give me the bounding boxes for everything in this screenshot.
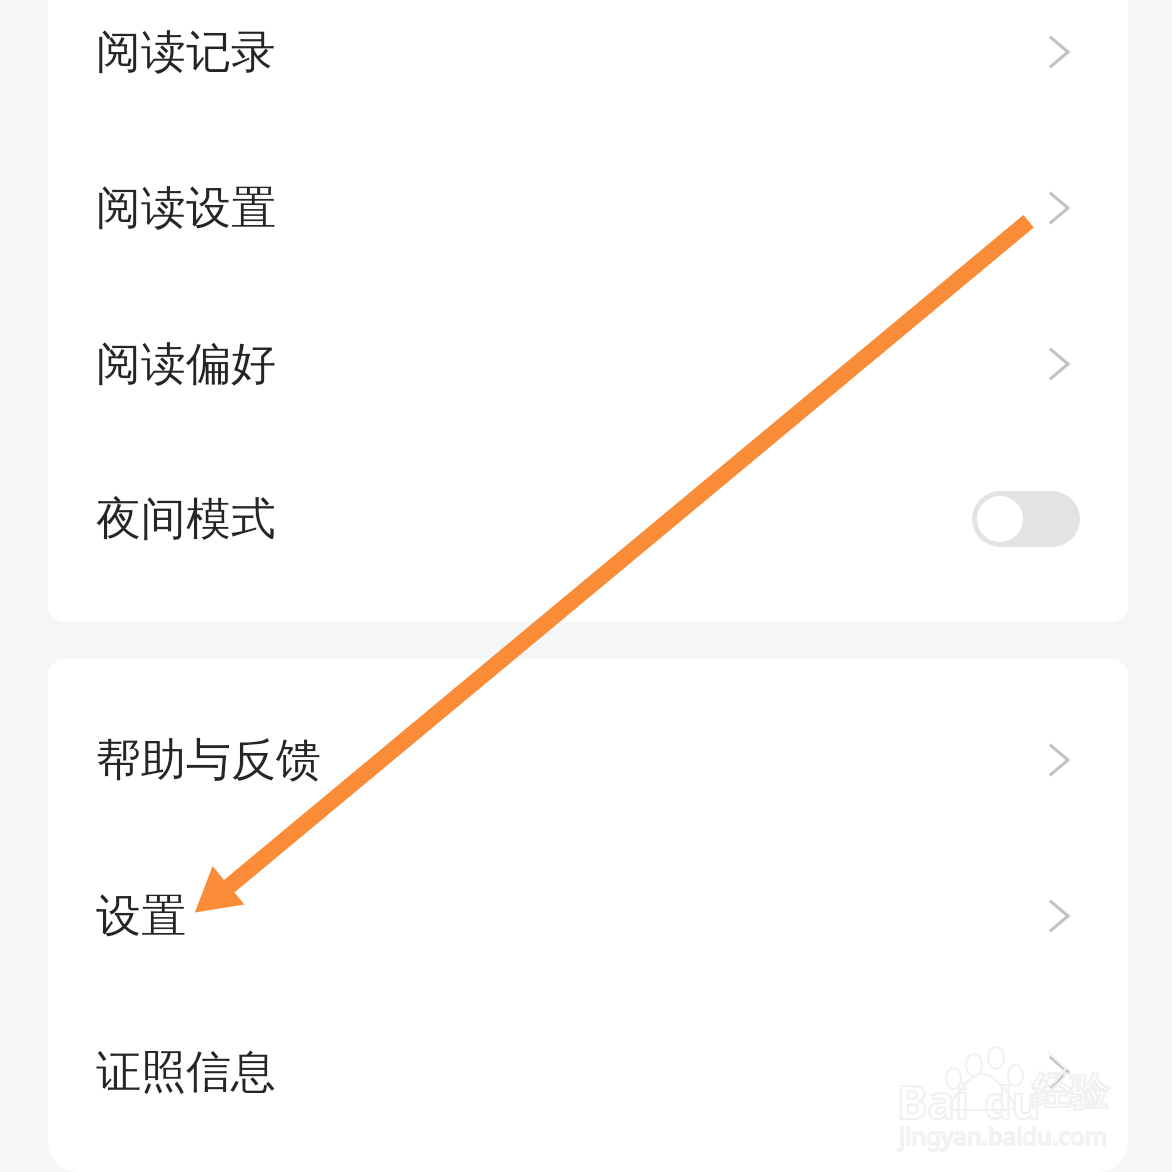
staticText: du xyxy=(984,1072,1041,1132)
other: 打开 设置 xyxy=(1050,896,1080,936)
button[interactable]: 设置 xyxy=(48,838,1128,994)
button[interactable]: 帮助与反馈 xyxy=(48,682,1128,838)
button[interactable]: 夜间模式 switch, off xyxy=(972,491,1080,547)
staticText: 经验 xyxy=(1032,1068,1108,1116)
button[interactable]: 证照信息 xyxy=(48,994,1128,1150)
other: 打开 阅读记录 xyxy=(1050,32,1080,72)
staticText: 阅读设置 xyxy=(96,180,276,237)
staticText: 帮助与反馈 xyxy=(96,732,321,789)
staticText: Bai xyxy=(897,1070,969,1133)
other: 打开 阅读设置 xyxy=(1050,188,1080,228)
other: 打开 证照信息 xyxy=(1050,1052,1080,1092)
staticText: 阅读偏好 xyxy=(96,336,276,393)
button[interactable]: 夜间模式 xyxy=(48,442,1128,596)
button[interactable]: 阅读设置 xyxy=(48,130,1128,286)
other: 打开 阅读偏好 xyxy=(1050,344,1080,384)
staticText: 阅读记录 xyxy=(96,24,276,81)
staticText: 夜间模式 xyxy=(96,491,276,548)
button[interactable]: 阅读偏好 xyxy=(48,286,1128,442)
button[interactable]: 阅读记录 xyxy=(48,0,1128,130)
staticText: jingyan.baidu.com xyxy=(899,1119,1107,1152)
other: 打开 帮助与反馈 xyxy=(1050,740,1080,780)
staticText: 证照信息 xyxy=(96,1044,276,1101)
staticText: 设置 xyxy=(96,888,186,945)
